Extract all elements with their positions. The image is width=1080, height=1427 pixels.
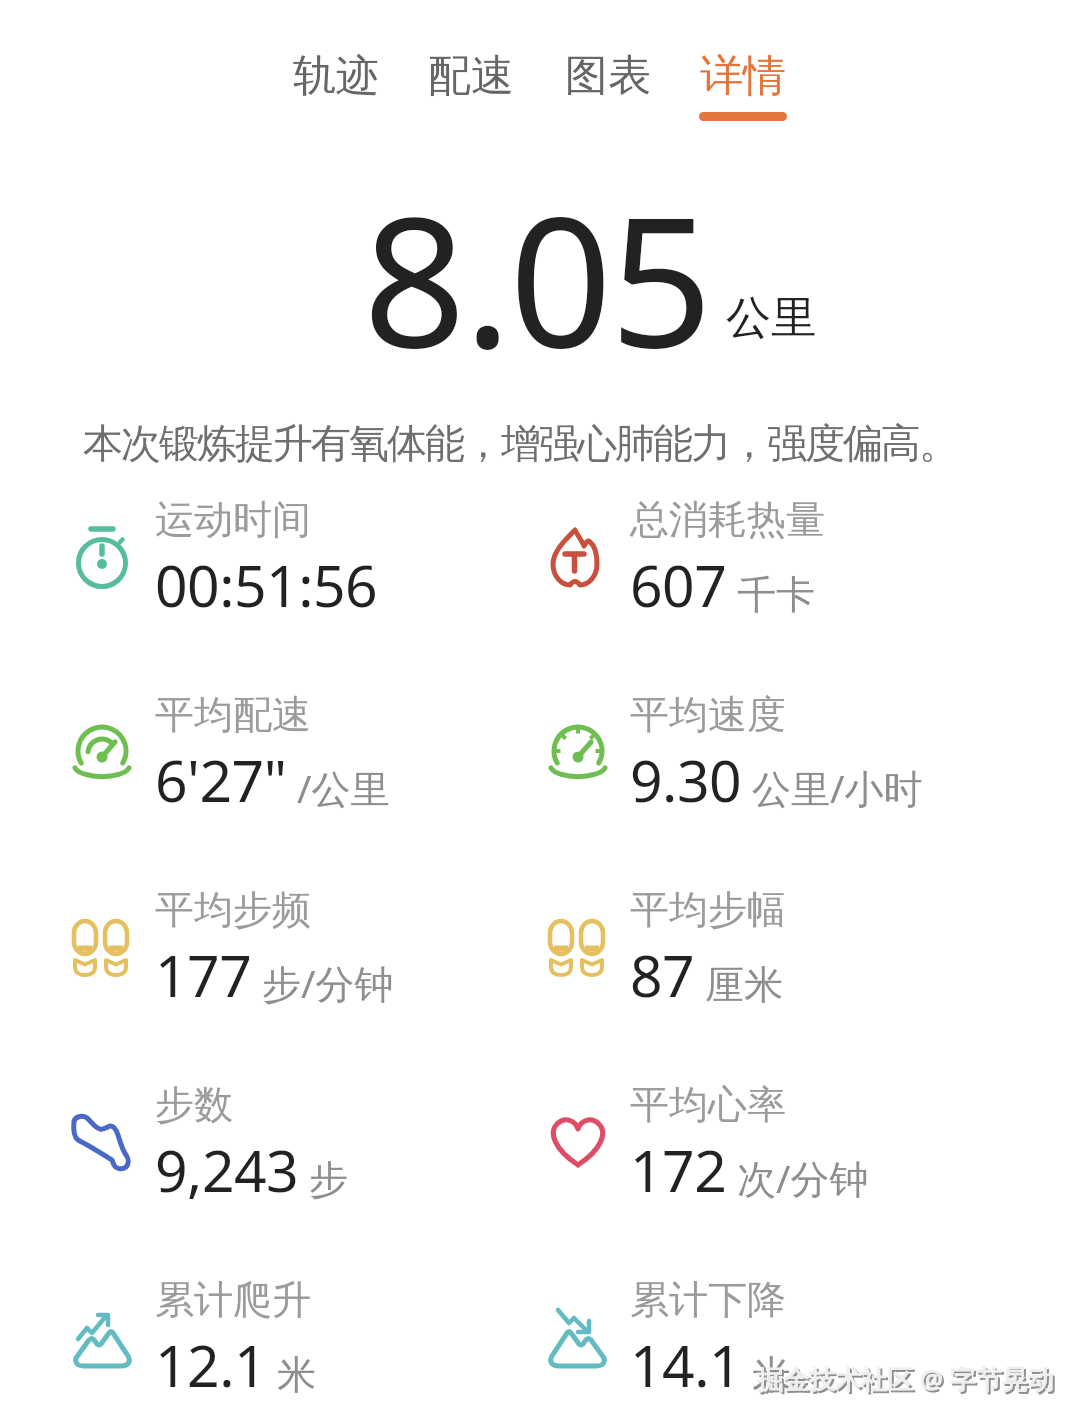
staticText: 米 bbox=[752, 1350, 791, 1399]
staticText: /公里 bbox=[297, 761, 390, 814]
staticText: 详情 bbox=[700, 49, 786, 103]
staticText: 掘金技术社区 @ 字节晃动 bbox=[757, 1361, 1054, 1397]
staticText: 步数 bbox=[155, 1080, 233, 1129]
staticText: 9,243 bbox=[155, 1131, 299, 1209]
staticText: 607 bbox=[630, 546, 727, 624]
staticText: 平均步频 bbox=[155, 885, 311, 934]
staticText: 次/分钟 bbox=[737, 1151, 869, 1204]
staticText: 本次锻炼提升有氧体能，增强心肺能力，强度偏高。 bbox=[84, 418, 958, 468]
staticText: 累计爬升 bbox=[155, 1275, 311, 1324]
staticText: 8.05 bbox=[363, 155, 711, 400]
button[interactable]: 配速 bbox=[411, 40, 531, 112]
staticText: 12.1 bbox=[155, 1326, 267, 1404]
button[interactable]: 图表 bbox=[548, 40, 668, 112]
staticText: 177 bbox=[155, 936, 252, 1014]
staticText: 米 bbox=[277, 1350, 316, 1399]
staticText: 轨迹 bbox=[293, 49, 379, 103]
staticText: 平均速度 bbox=[630, 690, 786, 739]
staticText: 千卡 bbox=[737, 570, 815, 619]
staticText: 累计下降 bbox=[630, 1275, 786, 1324]
staticText: 厘米 bbox=[705, 960, 783, 1009]
staticText: 步 bbox=[309, 1155, 348, 1204]
staticText: 87 bbox=[630, 936, 695, 1014]
staticText: 14.1 bbox=[630, 1326, 742, 1404]
button[interactable]: 详情 bbox=[683, 40, 803, 112]
staticText: 00:51:56 bbox=[155, 546, 378, 624]
staticText: 6'27" bbox=[155, 741, 287, 819]
staticText: 9.30 bbox=[630, 741, 742, 819]
staticText: 步/分钟 bbox=[262, 956, 394, 1009]
staticText: 公里 bbox=[726, 290, 816, 347]
staticText: 运动时间 bbox=[155, 495, 311, 544]
staticText: 图表 bbox=[565, 49, 651, 103]
staticText: 掘金技术社区 @ 字节晃动 bbox=[759, 1363, 1056, 1399]
staticText: 平均步幅 bbox=[630, 885, 786, 934]
staticText: 平均配速 bbox=[155, 690, 311, 739]
staticText: 公里/小时 bbox=[752, 761, 923, 814]
staticText: 平均心率 bbox=[630, 1080, 786, 1129]
staticText: 总消耗热量 bbox=[630, 495, 825, 544]
staticText: 配速 bbox=[428, 49, 514, 103]
button[interactable]: 轨迹 bbox=[276, 40, 396, 112]
staticText: 172 bbox=[630, 1131, 727, 1209]
